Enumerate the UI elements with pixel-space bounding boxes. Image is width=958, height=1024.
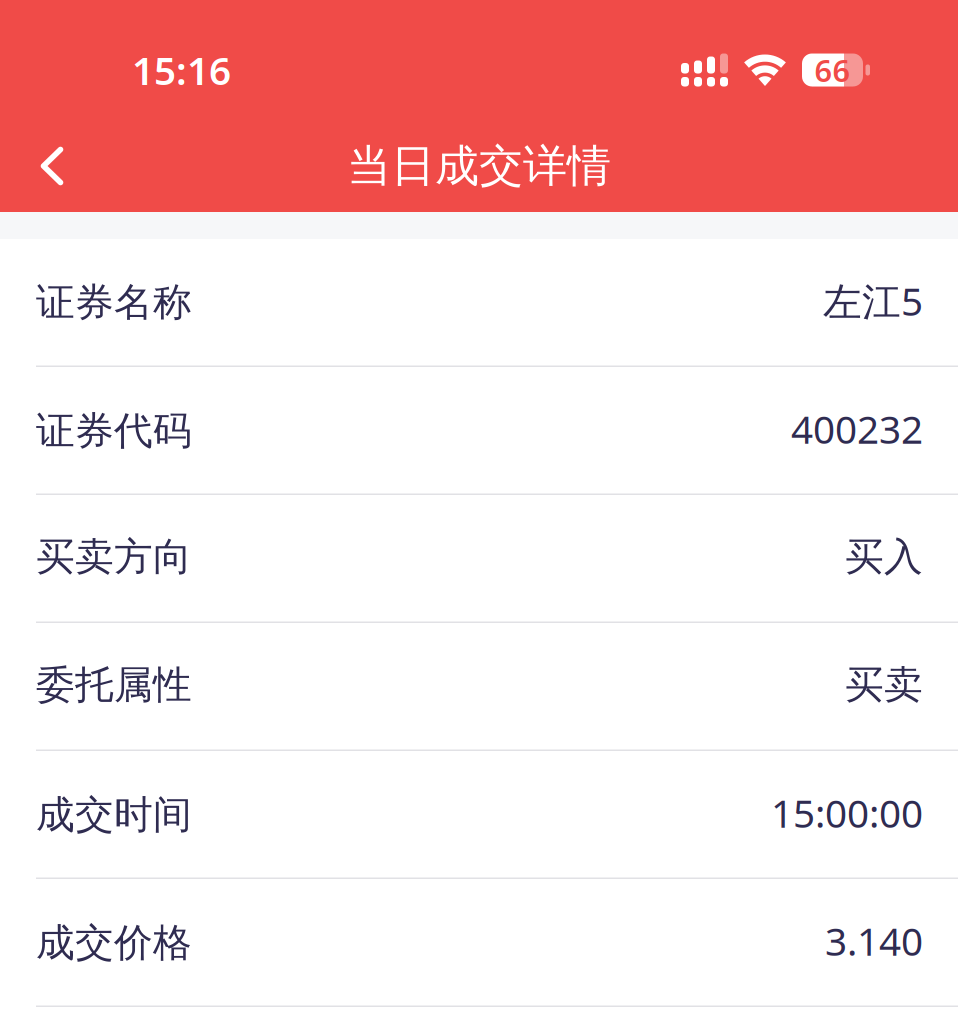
staticText: 成交价格 [36,918,192,967]
staticText: 买卖 [845,660,923,709]
staticText: 买入 [845,532,923,581]
staticText: 证券名称 [36,278,192,327]
button[interactable]: Back [0,112,104,212]
staticText: 当日成交详情 [347,138,611,194]
staticText: 成交时间 [36,790,192,839]
staticText: 证券代码 [36,406,192,455]
staticText: 3.140 [825,914,923,967]
staticText: 15:16 [132,44,231,96]
staticText: 66 [814,49,850,91]
staticText: 左江5 [823,274,923,327]
staticText: 400232 [791,402,923,455]
staticText: 15:00:00 [771,786,923,839]
staticText: 委托属性 [36,660,192,709]
staticText: 买卖方向 [36,532,192,581]
